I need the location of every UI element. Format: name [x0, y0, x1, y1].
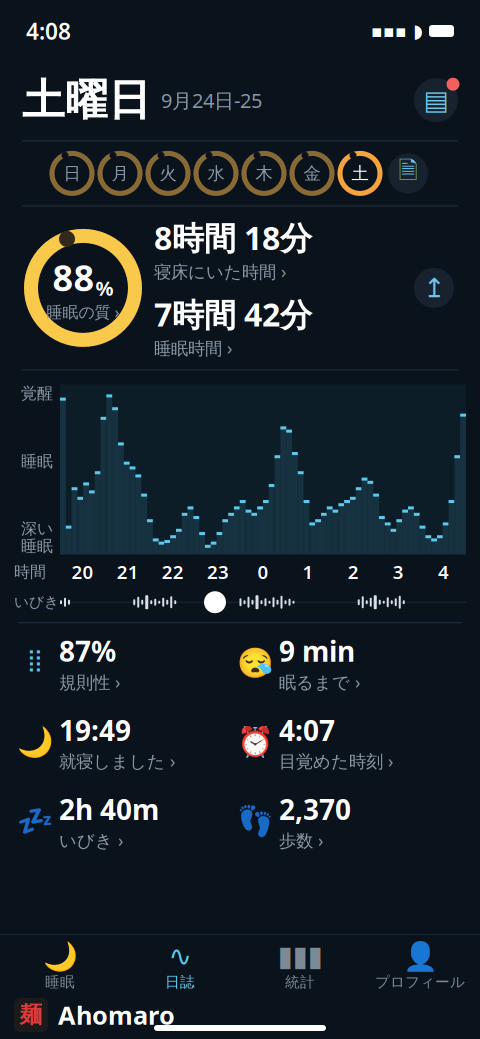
- staticText: 日誌: [165, 973, 195, 991]
- button[interactable]: 👣: [240, 791, 460, 852]
- staticText: 9 min: [279, 632, 355, 669]
- staticText: 麺: [19, 1001, 42, 1029]
- staticText: 3: [393, 559, 404, 584]
- staticText: ▤: [423, 85, 448, 115]
- button[interactable]: 8時間 18分: [154, 216, 312, 283]
- staticText: 🌙: [42, 940, 77, 972]
- staticText: ◗: [413, 20, 423, 42]
- staticText: 🗎: [398, 153, 417, 193]
- staticText: 4:08: [26, 16, 71, 46]
- staticText: 88: [52, 253, 94, 301]
- button[interactable]: 月: [96, 149, 144, 197]
- staticText: ⦙⦙: [28, 648, 42, 677]
- button[interactable]: 水: [192, 149, 240, 197]
- staticText: 睡眠: [21, 536, 53, 556]
- staticText: 👤: [402, 940, 437, 972]
- staticText: 8時間 18分: [154, 216, 312, 259]
- staticText: 9月24日-25: [151, 87, 262, 113]
- staticText: 2h 40m: [59, 791, 159, 828]
- staticText: 眠るまで ›: [279, 670, 360, 693]
- button[interactable]: 日: [48, 149, 96, 197]
- staticText: 時間: [14, 562, 46, 582]
- staticText: 💤: [16, 804, 53, 838]
- staticText: ⏰: [236, 725, 273, 759]
- button[interactable]: 金: [288, 149, 336, 197]
- button[interactable]: 土: [336, 149, 384, 197]
- staticText: 睡眠の質 ›: [46, 301, 119, 322]
- staticText: ▮▮▮: [277, 940, 322, 972]
- staticText: いびき ›: [59, 829, 123, 852]
- staticText: プロフィール: [375, 973, 465, 991]
- button[interactable]: 🌙: [20, 711, 240, 773]
- staticText: 20: [72, 559, 94, 584]
- button[interactable]: カレンダー: [414, 78, 458, 122]
- staticText: 睡眠: [45, 973, 75, 991]
- button[interactable]: ⏰: [240, 711, 460, 773]
- staticText: 目覚めた時刻 ›: [279, 750, 393, 773]
- staticText: 就寝しました ›: [59, 750, 175, 773]
- staticText: %: [95, 275, 113, 301]
- staticText: 🌙: [16, 725, 53, 759]
- staticText: 火: [159, 163, 176, 184]
- button[interactable]: 火: [144, 149, 192, 197]
- staticText: 水: [207, 163, 224, 184]
- staticText: 😪: [236, 646, 273, 680]
- button[interactable]: 😪: [240, 632, 460, 693]
- button[interactable]: 共有: [414, 268, 454, 308]
- staticText: 21: [117, 559, 139, 584]
- staticText: 87%: [59, 632, 116, 669]
- staticText: ∿: [168, 940, 191, 972]
- button[interactable]: 7時間 42分: [154, 293, 312, 359]
- staticText: ↥: [423, 273, 445, 303]
- staticText: 0: [257, 559, 268, 584]
- staticText: 寝床にいた時間 ›: [154, 260, 286, 283]
- button[interactable]: メモ: [384, 149, 432, 197]
- staticText: 土曜日: [22, 74, 151, 126]
- staticText: 👣: [236, 804, 273, 838]
- staticText: 23: [207, 559, 229, 584]
- button[interactable]: 🌙: [0, 935, 120, 991]
- button[interactable]: 💤: [20, 791, 240, 852]
- button[interactable]: 👤: [360, 935, 480, 991]
- staticText: 7時間 42分: [154, 293, 312, 335]
- button[interactable]: ∿: [120, 935, 240, 991]
- staticText: 2: [348, 559, 359, 584]
- staticText: 睡眠時間 ›: [154, 336, 232, 359]
- staticText: 金: [303, 163, 320, 184]
- staticText: 22: [162, 559, 184, 584]
- staticText: 歩数 ›: [279, 829, 323, 852]
- staticText: 19:49: [59, 711, 131, 749]
- staticText: 4: [438, 559, 449, 584]
- staticText: ▪▪▪: [371, 21, 407, 41]
- staticText: 規則性 ›: [59, 670, 120, 693]
- button[interactable]: 木: [240, 149, 288, 197]
- staticText: Ahomaro: [58, 998, 175, 1032]
- staticText: 2,370: [279, 791, 351, 828]
- staticText: 1: [303, 559, 314, 584]
- button[interactable]: ⦙⦙: [20, 632, 240, 693]
- staticText: 睡眠: [21, 452, 53, 471]
- staticText: 木: [255, 163, 272, 184]
- staticText: 日: [63, 163, 80, 184]
- staticText: 月: [111, 163, 128, 184]
- staticText: 4:07: [279, 711, 335, 749]
- staticText: 統計: [285, 973, 315, 991]
- staticText: 土: [351, 163, 368, 184]
- staticText: 深い: [21, 519, 53, 538]
- staticText: 覚醒: [21, 384, 53, 403]
- button[interactable]: ▮▮▮: [240, 935, 360, 991]
- staticText: いびき: [14, 593, 59, 611]
